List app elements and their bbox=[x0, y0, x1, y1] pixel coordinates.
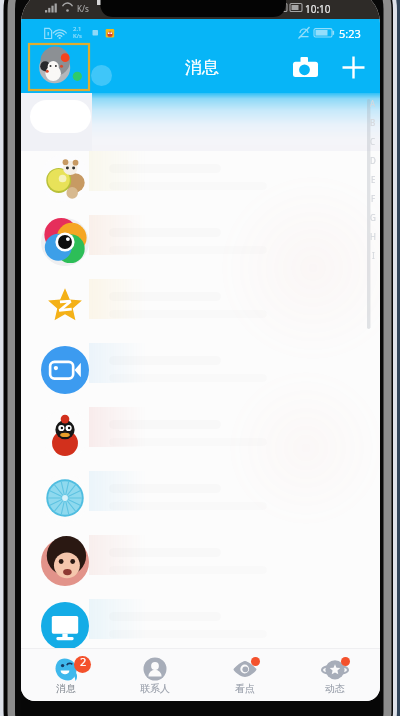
button[interactable]: 联系人 bbox=[110, 649, 200, 701]
staticText: 看点 bbox=[235, 682, 255, 695]
button[interactable] bbox=[21, 274, 380, 338]
staticText: 消息 bbox=[185, 57, 219, 78]
staticText: F bbox=[371, 193, 376, 204]
button[interactable]: 看点 bbox=[200, 649, 290, 701]
staticText: 联系人 bbox=[140, 682, 170, 695]
button[interactable]: Profile avatar bbox=[29, 44, 89, 90]
staticText: K/s bbox=[73, 32, 82, 40]
staticText: K/s bbox=[77, 3, 89, 14]
button[interactable] bbox=[21, 146, 380, 210]
button[interactable] bbox=[21, 338, 380, 402]
staticText: 动态 bbox=[325, 682, 345, 695]
staticText: D bbox=[370, 155, 376, 166]
button[interactable]: 动态 bbox=[290, 649, 380, 701]
button[interactable] bbox=[21, 530, 380, 594]
button[interactable] bbox=[21, 594, 380, 658]
staticText: 消息 bbox=[56, 682, 76, 695]
staticText: G bbox=[370, 212, 376, 223]
button[interactable]: Search bbox=[91, 65, 112, 86]
button[interactable] bbox=[21, 402, 380, 466]
staticText: C bbox=[370, 136, 376, 147]
staticText: I bbox=[372, 250, 375, 261]
staticText: B bbox=[370, 117, 376, 128]
staticText: A bbox=[370, 98, 376, 109]
staticText: H bbox=[370, 231, 376, 242]
button[interactable]: Search box bbox=[30, 100, 91, 133]
button[interactable] bbox=[21, 466, 380, 530]
button[interactable]: Camera bbox=[288, 50, 322, 84]
staticText: 2.1 bbox=[73, 25, 82, 33]
staticText: 2 bbox=[80, 654, 87, 669]
staticText: 10:10 bbox=[305, 2, 331, 16]
button[interactable]: Add bbox=[336, 50, 370, 84]
staticText: E bbox=[371, 174, 376, 185]
button[interactable] bbox=[21, 210, 380, 274]
button[interactable]: 2 bbox=[21, 649, 110, 701]
staticText: 5:23 bbox=[339, 26, 361, 41]
